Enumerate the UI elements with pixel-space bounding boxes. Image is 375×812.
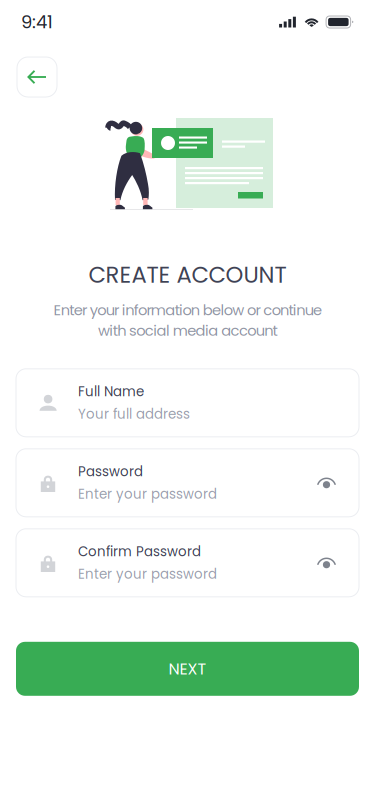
button[interactable]: Back xyxy=(17,57,57,97)
button[interactable]: Confirm Password xyxy=(16,529,359,597)
staticText: NEXT xyxy=(168,658,206,680)
staticText: Enter your password xyxy=(78,565,217,583)
staticText: Confirm Password xyxy=(78,542,201,561)
button[interactable]: Full Name xyxy=(16,369,359,437)
staticText: CREATE ACCOUNT xyxy=(88,259,286,291)
button[interactable]: Password xyxy=(16,449,359,517)
staticText: 9:41 xyxy=(21,9,53,35)
staticText: Password xyxy=(78,462,143,481)
staticText: Enter your information below or continue… xyxy=(53,300,322,341)
button[interactable]: NEXT xyxy=(16,642,359,696)
staticText: Full Name xyxy=(78,382,144,401)
staticText: Your full address xyxy=(78,405,190,423)
staticText: Enter your password xyxy=(78,485,217,503)
